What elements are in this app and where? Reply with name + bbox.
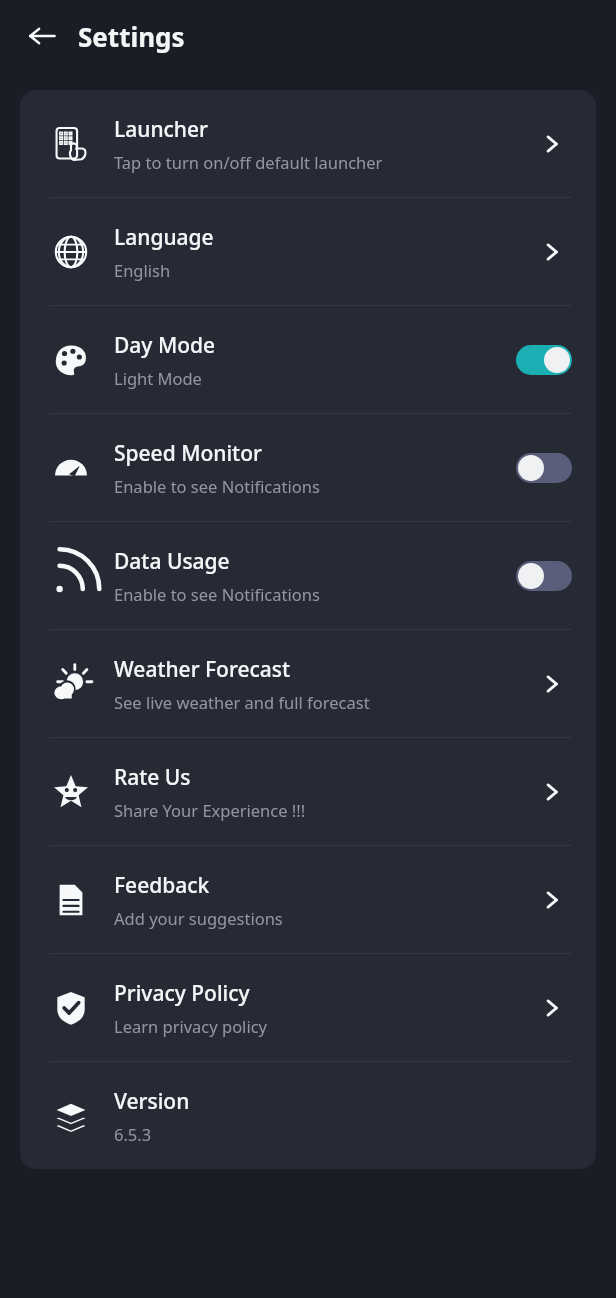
button[interactable]: Launcher (20, 90, 596, 197)
staticText: Enable to see Notifications (114, 475, 320, 497)
staticText: Tap to turn on/off default launcher (114, 151, 383, 173)
staticText: 6.5.3 (114, 1123, 152, 1145)
button[interactable]: Weather Forecast (20, 630, 596, 737)
staticText: Share Your Experience !!! (114, 799, 306, 821)
staticText: Learn privacy policy (114, 1015, 267, 1037)
staticText: Rate Us (114, 763, 191, 792)
staticText: Language (114, 223, 214, 252)
staticText: Data Usage (114, 547, 230, 576)
staticText: Feedback (114, 871, 210, 900)
button[interactable]: Feedback (532, 880, 572, 920)
staticText: Light Mode (114, 367, 202, 389)
staticText: Enable to see Notifications (114, 583, 320, 605)
button[interactable]: Language (20, 198, 596, 305)
button[interactable]: Privacy Policy (20, 954, 596, 1061)
staticText: Settings (78, 19, 185, 54)
staticText: See live weather and full forecast (114, 691, 370, 713)
staticText: Add your suggestions (114, 907, 283, 929)
button[interactable]: Back (18, 12, 66, 60)
button[interactable]: Data Usage (516, 561, 572, 591)
staticText: Weather Forecast (114, 655, 291, 684)
staticText: English (114, 259, 171, 281)
staticText: Launcher (114, 115, 208, 144)
button[interactable]: Privacy Policy (532, 988, 572, 1028)
staticText: Privacy Policy (114, 979, 250, 1008)
staticText: Day Mode (114, 331, 216, 360)
button[interactable]: Language (532, 232, 572, 272)
button[interactable]: Rate Us (532, 772, 572, 812)
button[interactable]: Day Mode (516, 345, 572, 375)
button[interactable]: Weather Forecast (532, 664, 572, 704)
button[interactable]: Day Mode (20, 306, 596, 413)
button[interactable]: Rate Us (20, 738, 596, 845)
staticText: Speed Monitor (114, 439, 262, 468)
staticText: Version (114, 1087, 190, 1116)
button[interactable]: Feedback (20, 846, 596, 953)
button[interactable]: Speed Monitor (516, 453, 572, 483)
button[interactable]: Data Usage (20, 522, 596, 629)
button[interactable]: Version (20, 1062, 596, 1169)
button[interactable]: Speed Monitor (20, 414, 596, 521)
button[interactable]: Launcher (532, 124, 572, 164)
